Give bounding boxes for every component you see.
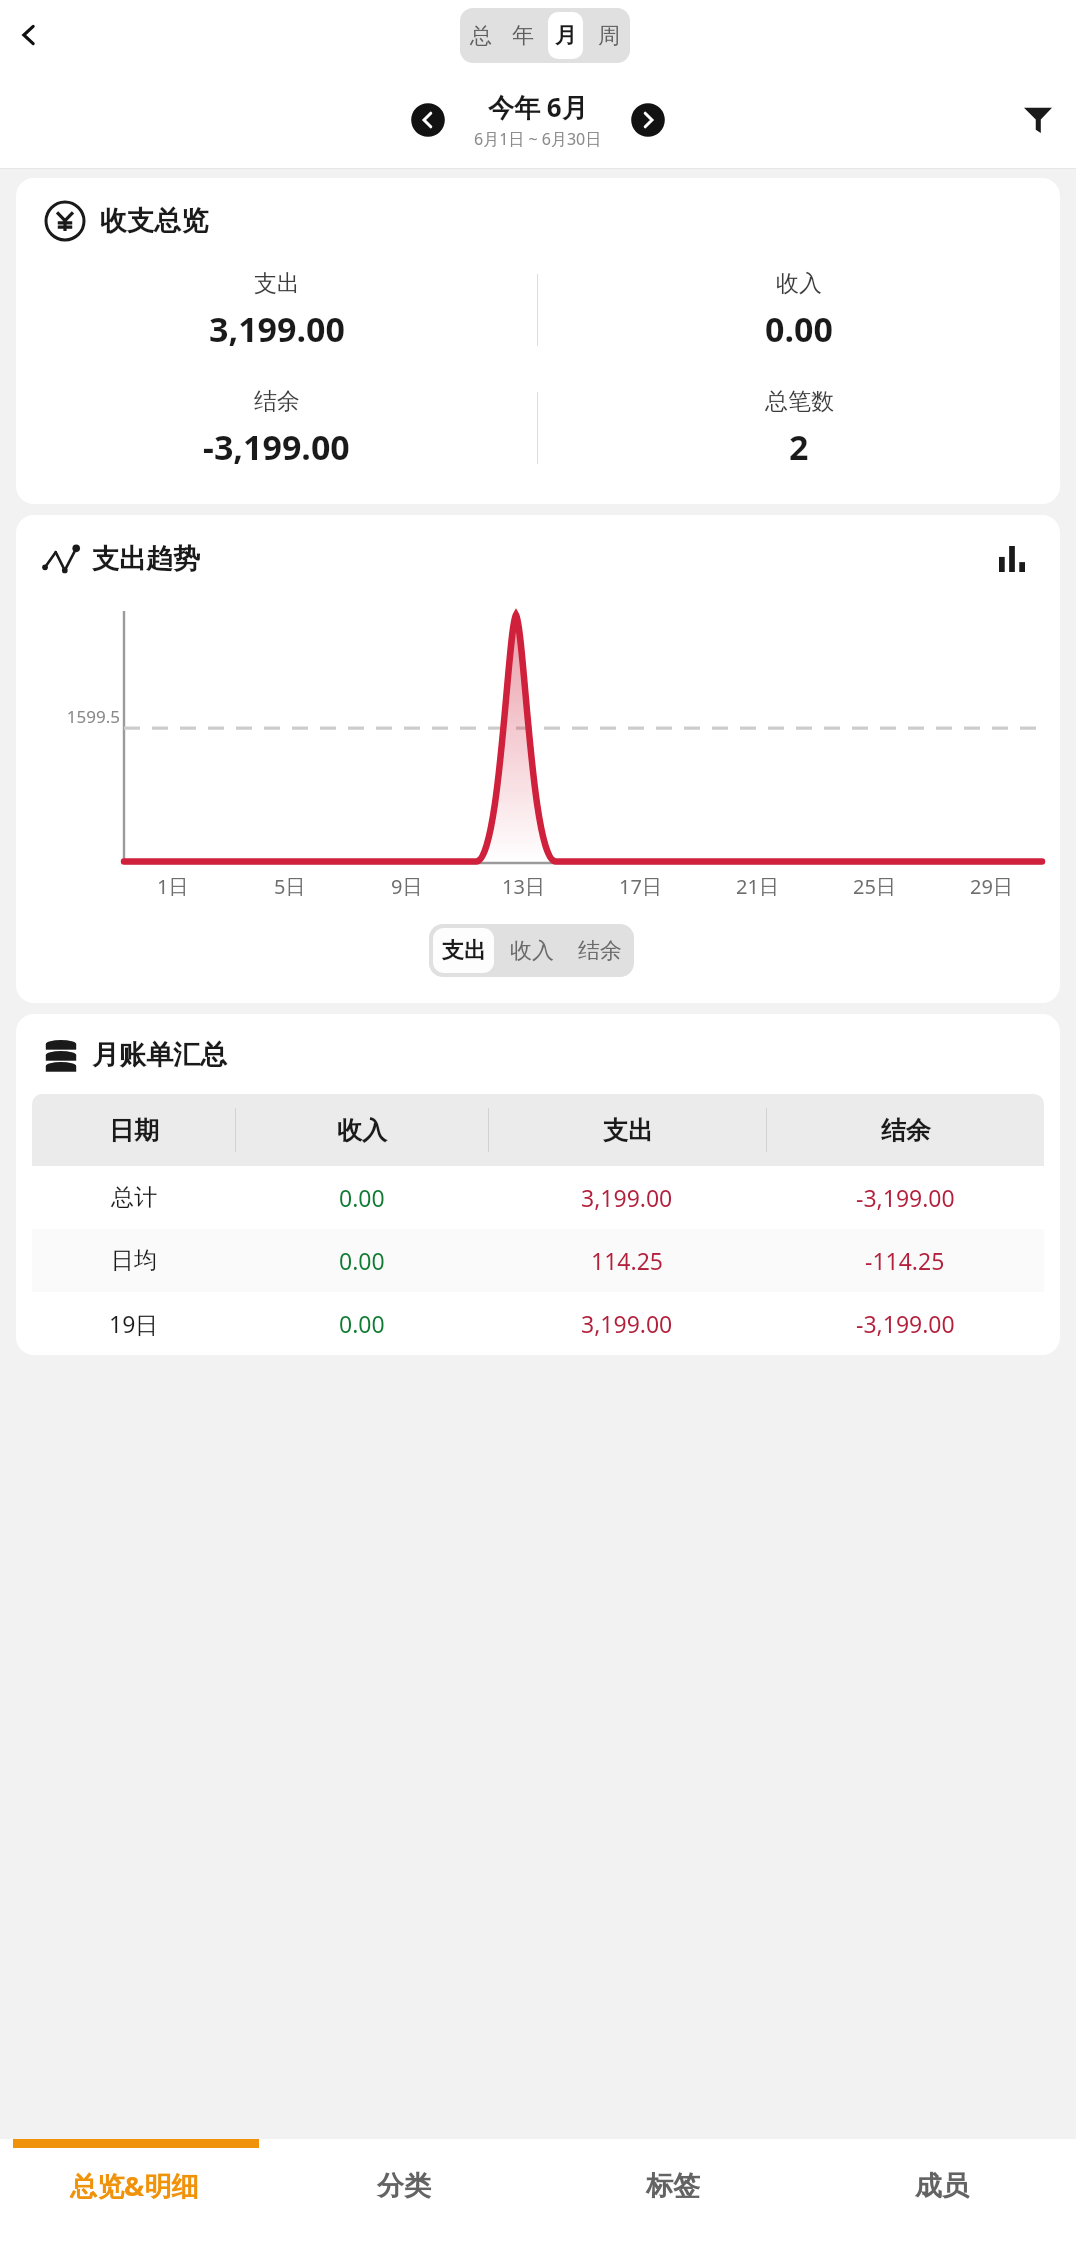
staticText: 日均 [111, 1246, 157, 1275]
staticText: 3,199.00 [209, 306, 345, 352]
button[interactable]: 收入 [502, 928, 562, 973]
staticText: 支出趋势 [92, 542, 200, 576]
staticText: 1599.5 [58, 705, 120, 728]
staticText: 25日 [853, 873, 896, 900]
button[interactable]: 总计 [32, 1166, 1044, 1229]
staticText: 月账单汇总 [92, 1038, 227, 1072]
staticText: 收入 [337, 1115, 387, 1146]
button[interactable]: 结余 [570, 928, 630, 973]
button[interactable]: 支出 [433, 928, 494, 973]
staticText: 6月1日 ~ 6月30日 [474, 128, 602, 150]
staticText: 114.25 [591, 1245, 663, 1276]
button[interactable]: Back [5, 11, 53, 59]
staticText: -114.25 [865, 1245, 945, 1276]
button[interactable]: Next month [626, 98, 670, 142]
button[interactable]: 成员 [807, 2148, 1076, 2223]
staticText: 1日 [157, 873, 189, 900]
staticText: 总 [470, 22, 492, 50]
staticText: 收入 [510, 937, 554, 965]
staticText: 周 [598, 22, 620, 50]
staticText: 收入 [776, 269, 822, 298]
button[interactable]: 周 [591, 12, 626, 59]
staticText: -3,199.00 [856, 1182, 955, 1213]
button[interactable]: 总览&明细 [0, 2148, 269, 2223]
staticText: 分类 [377, 2169, 431, 2203]
staticText: 3,199.00 [581, 1308, 673, 1339]
staticText: 21日 [736, 873, 779, 900]
staticText: 月 [555, 22, 577, 50]
button[interactable]: 总 [464, 12, 498, 59]
staticText: 3,199.00 [581, 1182, 673, 1213]
staticText: 0.00 [765, 306, 833, 352]
staticText: 29日 [970, 873, 1013, 900]
staticText: -3,199.00 [856, 1308, 955, 1339]
staticText: 0.00 [339, 1308, 385, 1339]
staticText: 总计 [111, 1183, 157, 1212]
staticText: 成员 [915, 2169, 969, 2203]
button[interactable]: 19日 [32, 1292, 1044, 1355]
staticText: 2 [789, 424, 809, 470]
button[interactable]: 日均 [32, 1229, 1044, 1292]
staticText: 17日 [619, 873, 662, 900]
staticText: 支出 [603, 1115, 653, 1146]
staticText: 9日 [391, 873, 423, 900]
staticText: 年 [512, 22, 534, 50]
staticText: 5日 [274, 873, 306, 900]
staticText: 今年 6月 [488, 89, 588, 125]
staticText: 0.00 [339, 1245, 385, 1276]
staticText: 19日 [109, 1308, 159, 1339]
staticText: 日期 [109, 1115, 159, 1146]
staticText: 标签 [646, 2169, 700, 2203]
button[interactable]: 年 [506, 12, 540, 59]
staticText: 支出 [442, 937, 486, 965]
staticText: 结余 [881, 1115, 931, 1146]
staticText: 结余 [254, 387, 300, 416]
staticText: -3,199.00 [203, 424, 350, 470]
staticText: 总览&明细 [70, 2167, 199, 2204]
staticText: 收支总览 [100, 204, 208, 238]
button[interactable]: 标签 [538, 2148, 807, 2223]
button[interactable]: Previous month [406, 98, 450, 142]
staticText: 总笔数 [765, 387, 834, 416]
staticText: 13日 [502, 873, 545, 900]
button[interactable]: 分类 [269, 2148, 538, 2223]
button[interactable]: Switch chart type [990, 537, 1034, 581]
button[interactable]: Filter [1010, 91, 1066, 147]
staticText: 结余 [578, 937, 622, 965]
button[interactable]: 月 [548, 12, 583, 59]
staticText: 0.00 [339, 1182, 385, 1213]
staticText: 支出 [254, 269, 300, 298]
